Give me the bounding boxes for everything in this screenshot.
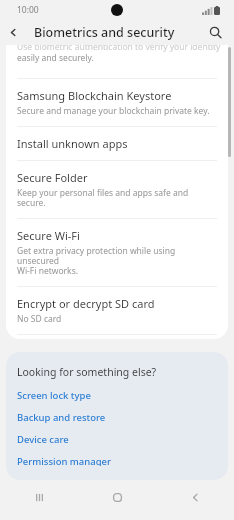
staticText: Use biometric authentication to verify y… [17,45,221,53]
staticText: Secure Wi-Fi [17,228,80,243]
staticText: No SD card [17,313,62,325]
staticText: Keep your personal files and apps safe a… [17,187,217,209]
staticText: Permission manager [17,455,112,466]
staticText: Encrypt or decrypt SD card [17,296,155,311]
button[interactable]: Search [202,20,228,45]
button[interactable]: Install unknown apps [6,127,228,160]
staticText: Backup and restore [17,411,106,424]
staticText: Biometrics and security [34,24,175,41]
button[interactable]: Home [78,480,156,514]
button[interactable]: Back [156,480,234,514]
button[interactable]: Samsung Blockchain Keystore [6,79,228,126]
staticText: 10:00 [17,4,39,16]
staticText: Get extra privacy protection while using… [17,245,217,277]
staticText: Secure and manage your blockchain privat… [17,105,210,117]
staticText: Install unknown apps [17,136,128,151]
button[interactable]: Other security settings [6,335,228,339]
button[interactable]: Device care [17,433,217,446]
button[interactable]: Navigate up [0,20,26,45]
staticText: Samsung Blockchain Keystore [17,88,172,103]
staticText: Looking for something else? [17,365,157,379]
staticText: Secure Folder [17,170,88,185]
button[interactable]: Secure Folder [6,161,228,218]
button[interactable]: Permission manager [17,455,217,466]
staticText: Device care [17,433,69,446]
staticText: easily and securely. [17,52,94,64]
button[interactable]: Recent apps [0,480,78,514]
button[interactable]: Secure Wi-Fi [6,219,228,286]
button[interactable]: Screen lock type [17,389,217,402]
button[interactable]: Encrypt or decrypt SD card [6,287,228,334]
button[interactable]: Backup and restore [17,411,217,424]
staticText: Screen lock type [17,389,91,402]
